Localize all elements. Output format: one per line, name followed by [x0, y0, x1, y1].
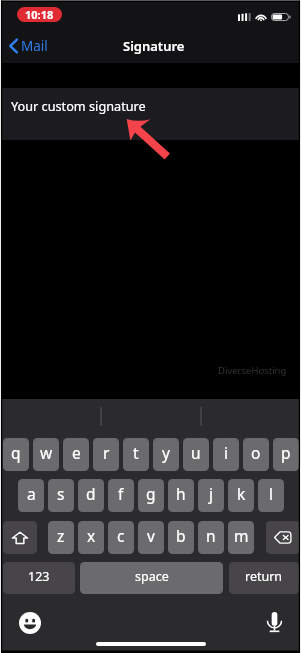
staticText: m: [234, 525, 249, 546]
button[interactable]: s: [48, 479, 74, 512]
staticText: p: [281, 442, 291, 463]
staticText: s: [57, 483, 65, 504]
staticText: y: [162, 442, 170, 463]
button[interactable]: u: [183, 438, 209, 471]
staticText: z: [57, 525, 65, 546]
button[interactable]: g: [138, 479, 164, 512]
staticText: g: [146, 483, 156, 504]
staticText: 10:18: [25, 7, 54, 22]
button[interactable]: n: [198, 521, 224, 554]
staticText: r: [103, 442, 110, 463]
staticText: b: [176, 525, 186, 546]
staticText: e: [72, 442, 81, 463]
button[interactable]: h: [168, 479, 194, 512]
staticText: h: [176, 483, 186, 504]
staticText: v: [147, 525, 155, 546]
button[interactable]: z: [48, 521, 74, 554]
button[interactable]: i: [213, 438, 239, 471]
staticText: w: [40, 442, 53, 463]
staticText: q: [11, 442, 21, 463]
button[interactable]: Your custom signature: [0, 88, 301, 140]
button[interactable]: e: [63, 438, 89, 471]
button[interactable]: d: [78, 479, 104, 512]
button[interactable]: w: [33, 438, 59, 471]
button[interactable]: b: [168, 521, 194, 554]
button[interactable]: 123: [3, 562, 75, 594]
button[interactable]: x: [78, 521, 104, 554]
staticText: n: [206, 525, 216, 546]
staticText: k: [237, 483, 246, 504]
staticText: j: [209, 483, 213, 504]
button[interactable]: p: [273, 438, 299, 471]
staticText: d: [86, 483, 96, 504]
button[interactable]: j: [198, 479, 224, 512]
staticText: x: [87, 525, 96, 546]
button[interactable]: k: [228, 479, 254, 512]
staticText: i: [224, 442, 228, 463]
staticText: a: [27, 483, 36, 504]
button[interactable]: c: [108, 521, 134, 554]
staticText: c: [117, 525, 125, 546]
button[interactable]: return: [229, 562, 299, 594]
button[interactable]: v: [138, 521, 164, 554]
button[interactable]: Shift: [3, 521, 37, 554]
button[interactable]: Dictation: [263, 611, 285, 633]
button[interactable]: l: [258, 479, 284, 512]
button[interactable]: Emoji keyboard: [19, 612, 41, 634]
staticText: t: [133, 442, 139, 463]
staticText: 123: [28, 568, 50, 585]
button[interactable]: r: [93, 438, 119, 471]
staticText: space: [135, 568, 169, 585]
button[interactable]: space: [80, 562, 223, 594]
button[interactable]: y: [153, 438, 179, 471]
staticText: f: [118, 483, 124, 504]
staticText: return: [245, 568, 283, 585]
button[interactable]: m: [228, 521, 254, 554]
staticText: Your custom signature: [11, 97, 146, 114]
staticText: Mail: [21, 37, 48, 55]
button[interactable]: Backspace: [266, 521, 300, 554]
button[interactable]: f: [108, 479, 134, 512]
button[interactable]: a: [18, 479, 44, 512]
button[interactable]: o: [243, 438, 269, 471]
staticText: Signature: [123, 37, 185, 55]
staticText: DiverseHosting: [218, 364, 287, 377]
staticText: l: [269, 483, 273, 504]
staticText: u: [191, 442, 201, 463]
staticText: o: [251, 442, 261, 463]
button[interactable]: t: [123, 438, 149, 471]
button[interactable]: Mail: [0, 33, 56, 59]
button[interactable]: q: [3, 438, 29, 471]
